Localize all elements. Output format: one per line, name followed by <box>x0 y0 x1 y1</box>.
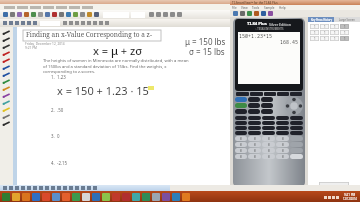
button[interactable]: Calculator key <box>248 136 261 141</box>
button[interactable]: Calculator key <box>248 116 261 120</box>
button[interactable]: Calculator key <box>248 131 261 135</box>
button[interactable] <box>59 12 64 17</box>
button[interactable]: Calculator key <box>262 116 275 120</box>
button[interactable]: Calculator key <box>235 131 247 135</box>
button[interactable]: Calculator key <box>276 148 289 153</box>
button[interactable]: TI-84 Plus calculator <box>233 18 305 186</box>
button[interactable]: Pen tool 3 <box>2 44 11 49</box>
button[interactable]: Toolbar action <box>233 11 238 16</box>
button[interactable]: Toolbar action <box>268 11 273 16</box>
button[interactable]: Key 21 <box>320 36 329 41</box>
button[interactable]: Calculator key <box>262 121 275 125</box>
button[interactable]: Pen tool 14 <box>2 121 11 126</box>
button[interactable]: 9:21 PM <box>343 193 357 201</box>
button[interactable]: Calculator key <box>276 142 289 147</box>
button[interactable] <box>87 12 92 17</box>
button[interactable]: Calculator key <box>290 136 303 141</box>
button[interactable]: Calculator key <box>248 154 261 159</box>
button[interactable]: Key 13 <box>340 30 349 35</box>
button[interactable]: Calculator key <box>248 97 260 102</box>
button[interactable]: Calculator key <box>261 103 273 108</box>
button[interactable]: Calculator key <box>235 142 247 147</box>
button[interactable]: Toolbar action <box>254 11 259 16</box>
button[interactable]: Key 11 <box>320 30 329 35</box>
button[interactable]: Calculator key <box>290 131 303 135</box>
button[interactable]: Calculator key <box>276 126 289 130</box>
button[interactable]: Pen tool 2 <box>2 37 11 42</box>
button[interactable]: Calculator key <box>248 109 260 114</box>
button[interactable]: Taskbar app <box>32 193 40 201</box>
button[interactable]: Calculator key <box>248 148 261 153</box>
button[interactable] <box>149 12 154 17</box>
button[interactable]: Pen tool 9 <box>2 86 11 91</box>
button[interactable]: Calculator key <box>262 148 275 153</box>
button[interactable]: Calculator key <box>262 136 275 141</box>
button[interactable]: Calculator key <box>290 126 303 130</box>
button[interactable]: Toolbar action <box>247 11 252 16</box>
button[interactable]: Calculator key <box>235 109 247 114</box>
button[interactable]: Taskbar app <box>182 193 190 201</box>
button[interactable]: Key 02 <box>330 24 339 29</box>
button[interactable]: Key 12 <box>330 30 339 35</box>
button[interactable]: Pen tool 7 <box>2 72 11 77</box>
button[interactable]: Taskbar app <box>92 193 100 201</box>
button[interactable]: Calculator key <box>276 136 289 141</box>
button[interactable]: Taskbar app <box>2 193 10 201</box>
button[interactable] <box>66 12 71 17</box>
button[interactable]: Calculator key <box>290 154 303 159</box>
button[interactable]: Pen tool 8 <box>2 79 11 84</box>
button[interactable]: Pen tool 12 <box>2 107 11 112</box>
button[interactable]: Calculator key <box>248 121 261 125</box>
button[interactable] <box>94 12 99 17</box>
button[interactable]: Taskbar app <box>72 193 80 201</box>
button[interactable]: Calculator key <box>290 116 303 120</box>
button[interactable]: Taskbar app <box>12 193 20 201</box>
button[interactable] <box>156 12 161 17</box>
button[interactable]: Taskbar app <box>162 193 170 201</box>
button[interactable]: Key 10 <box>310 30 319 35</box>
button[interactable]: Taskbar app <box>152 193 160 201</box>
button[interactable]: Pen tool 11 <box>2 100 11 105</box>
button[interactable]: Calculator key <box>235 126 247 130</box>
button[interactable]: Calculator key <box>276 121 289 125</box>
button[interactable]: Taskbar app <box>42 193 50 201</box>
button[interactable] <box>31 12 36 17</box>
button[interactable]: Calculator key <box>262 131 275 135</box>
button[interactable]: Calculator key <box>276 154 289 159</box>
button[interactable]: Calculator key <box>276 116 289 120</box>
button[interactable]: Taskbar app <box>62 193 70 201</box>
button[interactable] <box>38 12 43 17</box>
button[interactable]: Pen tool 5 <box>2 58 11 63</box>
button[interactable]: Soft key <box>264 92 276 96</box>
button[interactable]: Key 20 <box>310 36 319 41</box>
button[interactable]: Key 22 <box>330 36 339 41</box>
button[interactable]: Calculator key <box>262 126 275 130</box>
button[interactable]: Taskbar app <box>172 193 180 201</box>
button[interactable]: Soft key <box>236 92 249 96</box>
